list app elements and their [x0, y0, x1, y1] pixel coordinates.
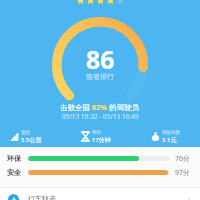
button[interactable]: 安全 [0, 168, 200, 177]
staticText: 环保 [7, 154, 21, 163]
staticText: 3.1元 [162, 136, 177, 144]
button[interactable]: 行车轨迹 [0, 188, 200, 200]
other: 驾驶花费 [150, 131, 161, 142]
button[interactable]: 驾驶花费 [150, 129, 180, 144]
other: More [186, 197, 192, 200]
button[interactable]: 查看排行 [86, 72, 114, 81]
staticText: 97分 [175, 168, 191, 177]
staticText: 用时 [92, 130, 101, 136]
button[interactable]: 里程 [9, 129, 42, 144]
staticText: 86 [86, 42, 115, 76]
staticText: 17分钟 [92, 136, 111, 144]
staticText: 行车轨迹 [28, 194, 56, 200]
staticText: 里程 [21, 130, 30, 136]
other: 里程 [9, 131, 20, 142]
staticText: 击败全国 82% 的驾驶员 [60, 102, 140, 112]
button[interactable]: 用时 [80, 129, 111, 144]
staticText: 驾驶花费 [162, 130, 180, 136]
staticText: 76分 [175, 154, 191, 163]
staticText: 05/13 16:32 - 05/13 16:49 [62, 112, 139, 121]
staticText: 5.5公里 [21, 136, 42, 144]
staticText: 安全 [7, 168, 21, 177]
other: 用时 [80, 131, 91, 142]
button[interactable]: 环保 [0, 154, 200, 163]
